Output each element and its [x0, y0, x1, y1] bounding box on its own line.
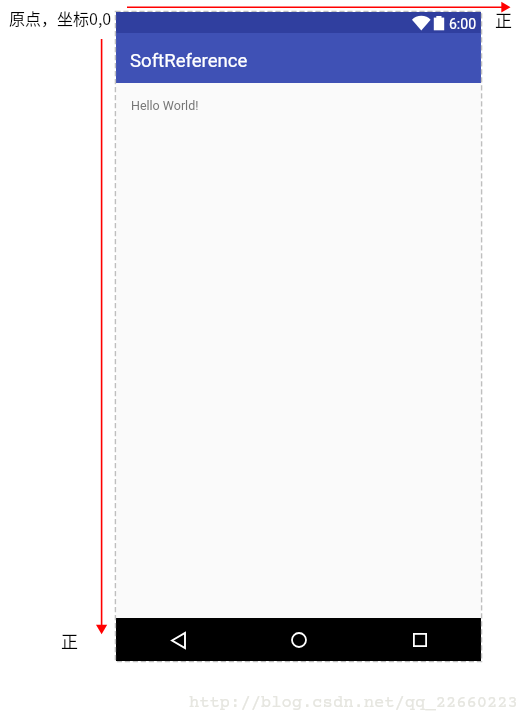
- staticText: 正: [61, 628, 78, 653]
- button[interactable]: Recent apps: [359, 618, 481, 661]
- button[interactable]: Home: [237, 618, 359, 661]
- staticText: http://blog.csdn.net/qq_22660223: [189, 694, 518, 713]
- button[interactable]: Back: [116, 618, 237, 661]
- staticText: 原点，坐标0,0: [9, 6, 112, 29]
- staticText: SoftReference: [130, 50, 248, 72]
- staticText: Hello World!: [131, 98, 199, 113]
- staticText: 正: [495, 7, 512, 32]
- staticText: 6:00: [449, 16, 476, 32]
